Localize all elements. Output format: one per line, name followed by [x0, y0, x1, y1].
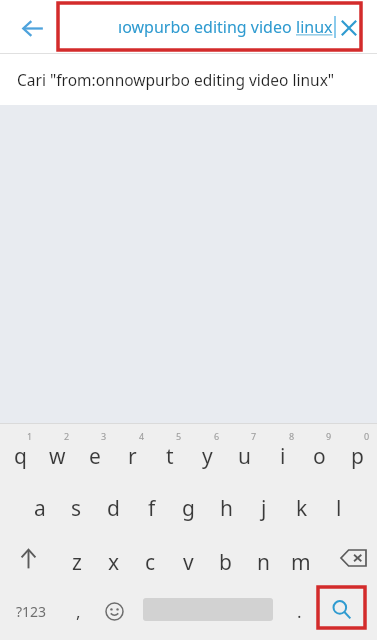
staticText: z — [72, 548, 82, 577]
button[interactable]: v — [170, 533, 207, 583]
staticText: s — [71, 494, 82, 523]
button[interactable]: f — [133, 479, 170, 529]
staticText: 5 — [176, 430, 182, 442]
button[interactable]: Backspace — [330, 533, 376, 583]
button[interactable]: n — [245, 533, 282, 583]
button[interactable]: j — [245, 479, 282, 529]
button[interactable]: 4 — [114, 427, 151, 477]
button[interactable]: a — [21, 479, 58, 529]
button[interactable]: x — [95, 533, 132, 583]
button[interactable]: 9 — [301, 427, 338, 477]
staticText: , — [76, 600, 81, 623]
button[interactable]: ?123 — [4, 587, 58, 635]
staticText: ?123 — [16, 602, 47, 621]
staticText: 8 — [289, 430, 295, 442]
button[interactable]: l — [320, 479, 357, 529]
button[interactable]: s — [58, 479, 95, 529]
button[interactable]: 3 — [76, 427, 113, 477]
staticText: g — [182, 494, 195, 523]
staticText: j — [261, 494, 267, 523]
staticText: 4 — [139, 430, 145, 442]
staticText: d — [107, 494, 120, 523]
staticText: 6 — [214, 430, 220, 442]
staticText: n — [257, 548, 270, 577]
button[interactable]: Back — [11, 7, 53, 49]
staticText: 1 — [27, 430, 33, 442]
staticText: x — [108, 548, 120, 577]
staticText: u — [238, 442, 251, 471]
staticText: l — [336, 494, 342, 523]
staticText: v — [183, 548, 194, 577]
staticText: h — [220, 494, 233, 523]
button[interactable]: 2 — [39, 427, 76, 477]
button[interactable]: Search — [319, 588, 364, 630]
staticText: i — [280, 442, 286, 471]
button[interactable]: Emoji — [96, 587, 132, 635]
button[interactable]: k — [283, 479, 320, 529]
button[interactable]: 7 — [226, 427, 263, 477]
staticText: q — [14, 442, 27, 471]
staticText: t — [166, 442, 174, 471]
button[interactable]: , — [60, 587, 96, 635]
button[interactable]: 1 — [2, 427, 39, 477]
staticText: k — [296, 494, 308, 523]
button[interactable]: 5 — [151, 427, 188, 477]
staticText: Cari "from:onnowpurbo editing video linu… — [17, 69, 335, 90]
staticText: e — [89, 442, 101, 471]
button[interactable]: Clear search — [330, 9, 368, 47]
button[interactable]: 0 — [339, 427, 376, 477]
staticText: 0 — [364, 430, 370, 442]
button[interactable]: Shift — [5, 533, 51, 583]
staticText: c — [145, 548, 156, 577]
staticText: o — [313, 442, 326, 471]
button[interactable]: Cari "from:onnowpurbo editing video linu… — [0, 54, 377, 105]
staticText: b — [219, 548, 232, 577]
button[interactable]: d — [95, 479, 132, 529]
button[interactable]: c — [132, 533, 169, 583]
button[interactable]: z — [58, 533, 95, 583]
staticText: . — [297, 600, 302, 623]
staticText: r — [128, 442, 137, 471]
staticText: 9 — [326, 430, 332, 442]
staticText: linux — [296, 16, 333, 38]
staticText: p — [351, 442, 364, 471]
button[interactable]: . — [282, 587, 316, 635]
staticText: f — [148, 494, 156, 523]
staticText: 7 — [251, 430, 257, 442]
button[interactable]: 8 — [264, 427, 301, 477]
staticText: a — [34, 494, 46, 523]
button[interactable]: ıowpurbo editing video — [68, 0, 336, 54]
staticText: m — [291, 548, 311, 577]
staticText: y — [202, 442, 213, 471]
button[interactable]: m — [282, 533, 319, 583]
button[interactable]: h — [208, 479, 245, 529]
staticText: 3 — [101, 430, 107, 442]
staticText: w — [49, 442, 66, 471]
staticText: ıowpurbo editing video — [118, 16, 296, 38]
button[interactable]: g — [170, 479, 207, 529]
button[interactable]: 6 — [189, 427, 226, 477]
button[interactable]: b — [207, 533, 244, 583]
staticText: 2 — [64, 430, 70, 442]
